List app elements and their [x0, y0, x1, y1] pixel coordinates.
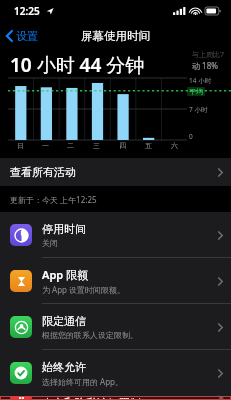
staticText: 查看所有活动: [10, 165, 76, 179]
staticText: 一: [42, 141, 49, 150]
staticText: 与上周比7: [192, 50, 225, 60]
button[interactable]: App 限额: [0, 258, 231, 304]
staticText: 内容和隐私访问限制: [42, 396, 141, 400]
staticText: 设置: [16, 29, 38, 43]
staticText: 7 小时: [189, 105, 208, 114]
staticText: 五: [145, 141, 152, 150]
staticText: App 限额: [42, 267, 89, 282]
button[interactable]: 内容和隐私访问限制: [0, 396, 231, 400]
staticText: 14 小时: [189, 76, 212, 85]
staticText: 根据您的联系人设定限制。: [42, 330, 138, 340]
staticText: 关闭: [42, 238, 58, 248]
button[interactable]: 查看所有活动: [0, 158, 231, 186]
staticText: 二: [67, 141, 74, 150]
staticText: 始终允许: [42, 360, 86, 374]
staticText: 选择始终可用的 App。: [42, 376, 124, 387]
staticText: 为 App 设置时间限额。: [42, 284, 126, 295]
staticText: 动 18%: [192, 60, 218, 71]
staticText: 六: [171, 141, 178, 150]
staticText: 10 小时 44 分钟: [10, 52, 145, 78]
staticText: 12:25: [14, 4, 40, 18]
staticText: 限定通信: [42, 314, 86, 328]
staticText: 平均: [189, 87, 203, 96]
button[interactable]: 始终允许: [0, 350, 231, 396]
staticText: 停用时间: [42, 222, 86, 236]
staticText: 屏幕使用时间: [81, 29, 150, 43]
staticText: 四: [119, 141, 126, 150]
button[interactable]: 限定通信: [0, 304, 231, 350]
staticText: 更新于：今天 上午12:25: [10, 194, 97, 205]
staticText: 三: [93, 141, 100, 150]
button[interactable]: 停用时间: [0, 212, 231, 258]
staticText: 0: [189, 132, 193, 141]
button[interactable]: 设置: [0, 25, 46, 47]
staticText: 日: [17, 141, 24, 150]
